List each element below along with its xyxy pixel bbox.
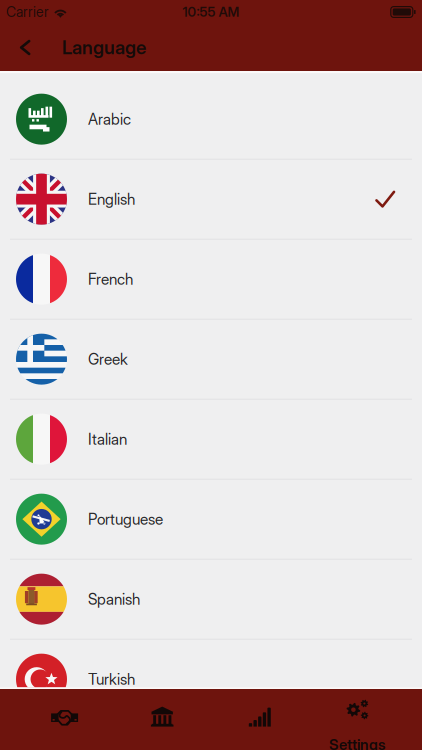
button[interactable]: Turkish <box>0 639 422 719</box>
button[interactable]: Spanish <box>0 559 422 639</box>
button[interactable]: Settings <box>309 689 406 750</box>
staticText: French <box>88 270 133 288</box>
staticText: 10:55 AM <box>182 4 239 20</box>
button[interactable]: French <box>0 239 422 319</box>
staticText: Portuguese <box>88 510 163 528</box>
button[interactable]: Greek <box>0 319 422 399</box>
staticText: Carrier <box>6 3 49 20</box>
staticText: Spanish <box>88 590 140 608</box>
staticText: Language <box>62 36 146 59</box>
staticText: Settings <box>329 735 386 750</box>
button[interactable]: Deals <box>16 689 113 750</box>
button[interactable]: Back <box>0 24 44 71</box>
staticText: Italian <box>88 430 127 448</box>
button[interactable]: Italian <box>0 399 422 479</box>
staticText: Turkish <box>88 670 135 688</box>
button[interactable]: Arabic <box>0 79 422 159</box>
button[interactable]: English <box>0 159 422 239</box>
staticText: English <box>88 190 135 208</box>
staticText: Arabic <box>88 110 131 128</box>
staticText: Greek <box>88 350 128 368</box>
button[interactable]: Banks <box>113 689 211 750</box>
button[interactable]: Portuguese <box>0 479 422 559</box>
button[interactable]: Rates <box>211 689 309 750</box>
